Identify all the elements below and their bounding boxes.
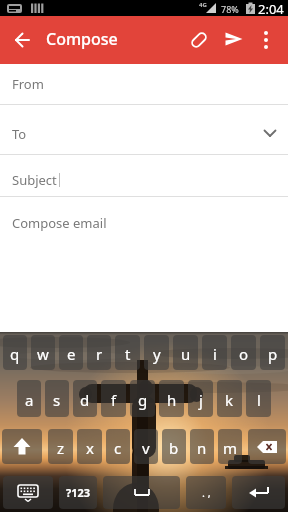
button[interactable] <box>232 476 285 509</box>
button[interactable] <box>0 16 44 64</box>
button[interactable]: d <box>73 380 97 417</box>
staticText: r <box>96 344 103 364</box>
staticText: Compose email <box>12 214 107 232</box>
staticText: g <box>138 390 148 410</box>
button[interactable] <box>182 16 216 64</box>
button[interactable] <box>252 16 280 64</box>
button[interactable]: v <box>134 429 158 464</box>
staticText: w <box>37 344 49 364</box>
staticText: q <box>10 344 20 364</box>
button[interactable]: u <box>173 335 198 370</box>
button[interactable]: f <box>101 380 126 417</box>
staticText: o <box>239 344 249 364</box>
button[interactable]: m <box>218 429 242 464</box>
staticText: ?123 <box>66 485 91 500</box>
staticText: v <box>142 438 150 458</box>
staticText: d <box>80 390 90 410</box>
button[interactable]: e <box>59 335 83 370</box>
button[interactable]: ?123 <box>59 476 97 509</box>
button[interactable]: r <box>87 335 111 370</box>
button[interactable]: o <box>231 335 256 370</box>
staticText: k <box>225 390 234 410</box>
button[interactable]: j <box>188 380 213 417</box>
button[interactable]: Subject <box>0 155 288 197</box>
button[interactable]: Compose email <box>0 197 288 239</box>
staticText: z <box>57 438 65 458</box>
button[interactable]: s <box>45 380 69 417</box>
button[interactable]: t <box>115 335 140 370</box>
staticText: p <box>268 344 278 364</box>
button[interactable]: n <box>190 429 214 464</box>
staticText: m <box>223 438 238 458</box>
button[interactable]: h <box>159 380 184 417</box>
staticText: 78% <box>221 3 239 15</box>
staticText: h <box>167 390 177 410</box>
button[interactable]: k <box>217 380 242 417</box>
button[interactable]: z <box>48 429 73 464</box>
staticText: 4G <box>199 1 207 9</box>
button[interactable]: p <box>260 335 285 370</box>
button[interactable]: y <box>144 335 169 370</box>
button[interactable] <box>3 476 53 509</box>
staticText: n <box>197 438 207 458</box>
button[interactable]: . , <box>186 476 226 509</box>
staticText: Subject <box>12 171 57 189</box>
button[interactable]: l <box>246 380 271 417</box>
button[interactable]: From <box>0 64 288 105</box>
button[interactable]: q <box>3 335 27 370</box>
staticText: Compose <box>46 28 118 50</box>
staticText: i <box>213 344 217 364</box>
staticText: t <box>125 344 131 364</box>
staticText: s <box>53 390 61 410</box>
staticText: x <box>86 438 94 458</box>
button[interactable]: b <box>162 429 186 464</box>
staticText: . , <box>202 485 211 500</box>
staticText: From <box>12 75 44 93</box>
button[interactable] <box>103 476 180 509</box>
staticText: u <box>181 344 191 364</box>
staticText: b <box>169 438 179 458</box>
button[interactable] <box>216 16 252 64</box>
button[interactable]: To <box>0 105 288 155</box>
button[interactable] <box>2 429 42 464</box>
staticText: e <box>67 344 76 364</box>
button[interactable]: x <box>77 429 102 464</box>
staticText: a <box>25 390 34 410</box>
staticText: l <box>257 390 261 410</box>
button[interactable] <box>248 429 286 464</box>
staticText: y <box>153 344 161 364</box>
button[interactable]: w <box>31 335 55 370</box>
staticText: j <box>199 390 203 410</box>
button[interactable]: g <box>130 380 155 417</box>
staticText: To <box>12 125 27 143</box>
staticText: c <box>114 438 122 458</box>
staticText: f <box>111 390 117 410</box>
button[interactable]: c <box>106 429 130 464</box>
button[interactable]: i <box>202 335 227 370</box>
staticText: 2:04 <box>258 0 284 16</box>
button[interactable]: a <box>17 380 41 417</box>
